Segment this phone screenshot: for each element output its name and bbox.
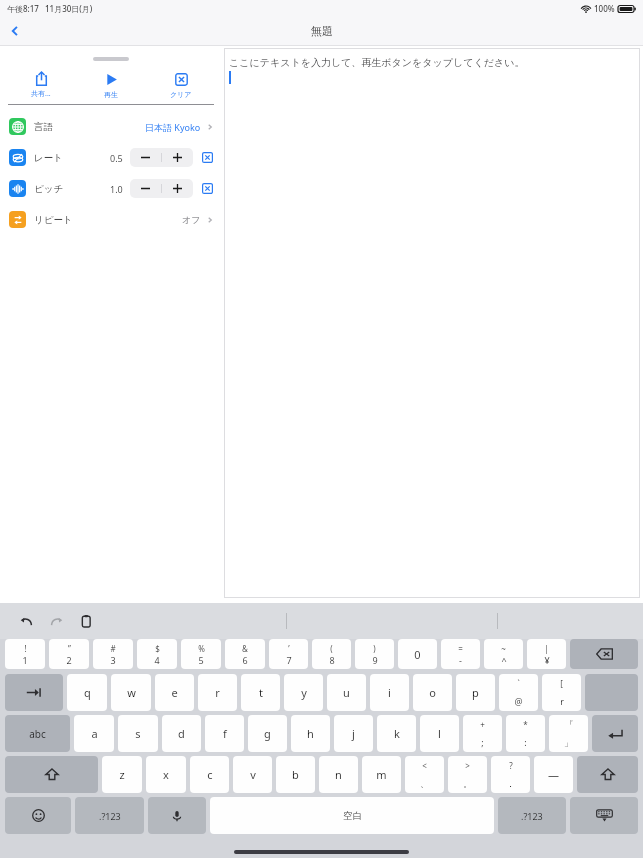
button[interactable]: * — [506, 715, 545, 752]
button[interactable]: ( — [312, 639, 351, 669]
button[interactable]: m — [362, 756, 401, 793]
button[interactable]: d — [162, 715, 201, 752]
button[interactable]: .?123 — [75, 797, 144, 834]
button[interactable]: 再生 — [76, 66, 146, 104]
staticText: 共有... — [31, 89, 51, 99]
button[interactable]: abc — [5, 715, 70, 752]
staticText: n — [335, 767, 342, 782]
button[interactable]: シフト — [577, 756, 638, 793]
button[interactable]: リセット — [201, 151, 214, 164]
staticText: 午後8:17 — [7, 3, 39, 14]
button[interactable]: やり直す — [44, 609, 68, 633]
staticText: 」 — [564, 737, 573, 748]
button[interactable]: < — [405, 756, 444, 793]
button[interactable]: v — [233, 756, 272, 793]
staticText: x — [163, 767, 169, 782]
button[interactable]: ’ — [269, 639, 308, 669]
button[interactable]: t — [241, 674, 280, 711]
staticText: ~ — [501, 643, 506, 654]
button[interactable]: # — [93, 639, 133, 669]
button[interactable]: u — [327, 674, 366, 711]
staticText: ` — [517, 678, 520, 689]
staticText: 。 — [463, 778, 472, 789]
button[interactable]: & — [225, 639, 265, 669]
button[interactable]: リピート — [0, 204, 222, 235]
button[interactable]: ここにテキストを入力して、再生ボタンをタップしてください。 — [224, 48, 640, 598]
button[interactable]: 増やす — [162, 179, 193, 198]
button[interactable]: 言語 — [0, 111, 222, 142]
button[interactable]: 改行 — [592, 715, 638, 752]
button[interactable]: ) — [355, 639, 394, 669]
button[interactable]: 増やす — [162, 148, 193, 167]
button[interactable]: s — [118, 715, 158, 752]
button[interactable]: r — [198, 674, 237, 711]
button[interactable]: — — [534, 756, 573, 793]
button[interactable]: 削除 — [570, 639, 638, 669]
button[interactable]: 『 — [549, 715, 588, 752]
button[interactable]: リセット — [201, 182, 214, 195]
staticText: レート — [34, 152, 63, 164]
button[interactable]: ~ — [484, 639, 523, 669]
button[interactable]: i — [370, 674, 409, 711]
button[interactable]: ` — [499, 674, 538, 711]
button[interactable]: 0 — [398, 639, 437, 669]
button[interactable]: シフト — [5, 756, 98, 793]
button[interactable]: 取り消す — [14, 609, 38, 633]
staticText: 言語 — [34, 121, 53, 133]
staticText: < — [422, 760, 427, 771]
button[interactable]: .?123 — [498, 797, 566, 834]
button[interactable]: 空白 — [210, 797, 494, 834]
button[interactable]: z — [102, 756, 142, 793]
button[interactable]: % — [181, 639, 221, 669]
button[interactable]: e — [155, 674, 194, 711]
button[interactable]: w — [111, 674, 151, 711]
button[interactable]: x — [146, 756, 186, 793]
button[interactable]: ペースト — [74, 609, 98, 633]
button[interactable]: | — [527, 639, 566, 669]
button[interactable]: [ — [542, 674, 581, 711]
button[interactable]: ” — [49, 639, 89, 669]
button[interactable]: ピッチ — [0, 173, 222, 204]
button[interactable]: ? — [491, 756, 530, 793]
button[interactable]: o — [413, 674, 452, 711]
button[interactable]: f — [205, 715, 244, 752]
staticText: [ — [560, 678, 563, 689]
button[interactable]: $ — [137, 639, 177, 669]
staticText: ’ — [288, 643, 290, 654]
button[interactable]: j — [334, 715, 373, 752]
button[interactable]: p — [456, 674, 495, 711]
button[interactable]: クリア — [146, 66, 216, 104]
button[interactable]: g — [248, 715, 287, 752]
button[interactable]: 減らす — [130, 148, 161, 167]
staticText: ^ — [501, 654, 507, 665]
staticText: ) — [373, 643, 376, 654]
button[interactable]: タブ — [5, 674, 63, 711]
button[interactable]: h — [291, 715, 330, 752]
button[interactable]: y — [284, 674, 323, 711]
button[interactable]: 減らす — [130, 179, 161, 198]
button[interactable]: > — [448, 756, 487, 793]
staticText: p — [472, 685, 479, 700]
button[interactable]: b — [276, 756, 315, 793]
button[interactable]: キーボードを閉じる — [570, 797, 638, 834]
staticText: | — [544, 643, 549, 654]
button[interactable]: l — [420, 715, 459, 752]
button[interactable]: 共有... — [6, 66, 76, 104]
button[interactable]: 絵文字 — [5, 797, 71, 834]
button[interactable]: レート — [0, 142, 222, 173]
staticText: # — [110, 643, 116, 654]
button[interactable]: k — [377, 715, 416, 752]
button[interactable]: = — [441, 639, 480, 669]
staticText: ; — [481, 736, 484, 748]
button[interactable]: a — [74, 715, 114, 752]
staticText: ここにテキストを入力して、再生ボタンをタップしてください。 — [229, 56, 525, 69]
button[interactable]: q — [67, 674, 107, 711]
button[interactable]: 音声入力 — [148, 797, 206, 834]
button[interactable]: n — [319, 756, 358, 793]
button[interactable]: + — [463, 715, 502, 752]
button[interactable]: 戻る — [2, 18, 28, 44]
staticText: * — [523, 719, 528, 730]
button[interactable]: ! — [5, 639, 45, 669]
button[interactable]: c — [190, 756, 229, 793]
